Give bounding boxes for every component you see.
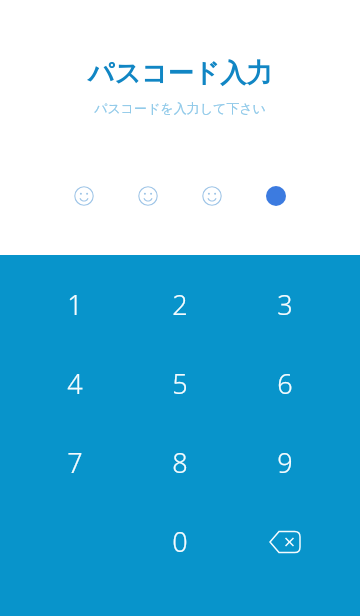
staticText: 3 (277, 286, 293, 323)
button[interactable]: 5 (127, 344, 232, 423)
button[interactable]: 3 (232, 265, 337, 344)
staticText: 4 (67, 365, 83, 402)
staticText: パスコードを入力して下さい (0, 100, 360, 116)
staticText: 0 (172, 523, 188, 560)
button[interactable]: Backspace (232, 502, 337, 581)
button[interactable]: 9 (232, 423, 337, 502)
button[interactable]: 6 (232, 344, 337, 423)
staticText: 2 (172, 286, 188, 323)
staticText: 7 (67, 444, 83, 481)
staticText: パスコード入力 (0, 57, 360, 90)
button[interactable]: 7 (22, 423, 127, 502)
button[interactable]: 8 (127, 423, 232, 502)
staticText: 6 (277, 365, 293, 402)
staticText: 8 (172, 444, 188, 481)
staticText: 9 (277, 444, 293, 481)
staticText: 1 (67, 286, 83, 323)
button[interactable]: 4 (22, 344, 127, 423)
staticText: 5 (172, 365, 188, 402)
button[interactable]: 0 (127, 502, 232, 581)
button[interactable]: 1 (22, 265, 127, 344)
button[interactable]: 2 (127, 265, 232, 344)
